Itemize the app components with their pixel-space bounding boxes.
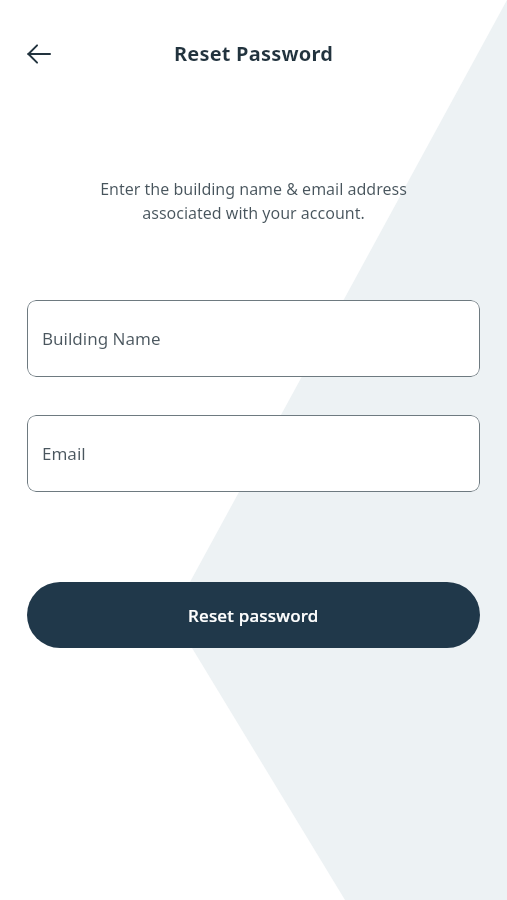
staticText: Reset password	[188, 604, 319, 627]
staticText: Email	[42, 442, 86, 465]
button[interactable]: Back	[15, 30, 63, 78]
button[interactable]: Email	[27, 415, 480, 492]
button[interactable]: Reset password	[27, 582, 480, 648]
button[interactable]: Building Name	[27, 300, 480, 377]
staticText: Building Name	[42, 327, 161, 350]
staticText: Reset Password	[174, 40, 333, 67]
staticText: Enter the building name & email address …	[36, 178, 471, 224]
